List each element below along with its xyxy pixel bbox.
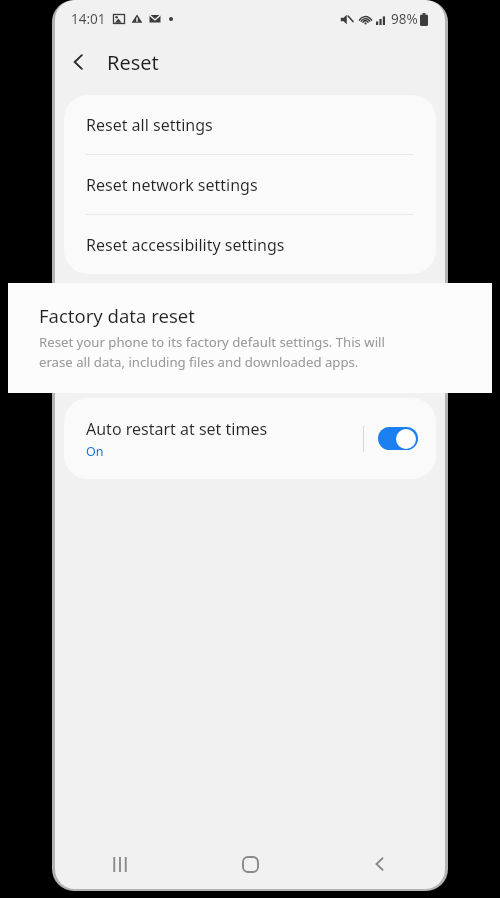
staticText: 14:01 — [71, 10, 106, 28]
button[interactable]: Back — [315, 839, 445, 889]
button[interactable]: Auto restart at set times — [64, 398, 436, 479]
staticText: Reset accessibility settings — [86, 234, 285, 256]
button[interactable]: Home — [185, 839, 315, 889]
staticText: Reset all settings — [86, 114, 213, 136]
staticText: Reset — [107, 49, 159, 76]
staticText: Factory data reset — [39, 303, 195, 328]
button[interactable]: Reset accessibility settings — [64, 215, 436, 274]
staticText: erase all data, including files and down… — [39, 353, 359, 371]
button[interactable]: Reset all settings — [64, 95, 436, 154]
button[interactable]: Back — [55, 38, 103, 86]
button[interactable]: Auto restart toggle, On — [378, 427, 418, 450]
staticText: On — [86, 443, 104, 460]
button[interactable]: Factory data reset — [8, 283, 492, 393]
button[interactable]: Reset network settings — [64, 155, 436, 214]
staticText: Reset your phone to its factory default … — [39, 333, 385, 351]
button[interactable]: Recent apps — [55, 839, 185, 889]
staticText: 98% — [391, 10, 418, 28]
staticText: Reset network settings — [86, 174, 258, 196]
staticText: Auto restart at set times — [86, 418, 268, 440]
